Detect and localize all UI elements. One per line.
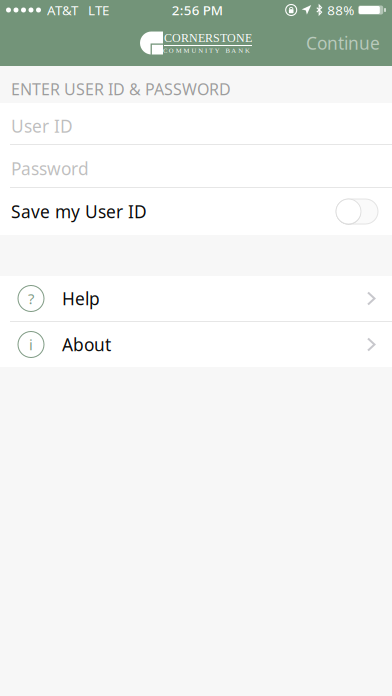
- staticText: Continue: [306, 31, 380, 54]
- button[interactable]: ?: [0, 276, 392, 321]
- staticText: Save my User ID: [11, 200, 147, 223]
- staticText: COMMUNITY BANK: [163, 47, 250, 54]
- button[interactable]: i: [0, 322, 392, 367]
- button[interactable]: Continue: [294, 21, 392, 65]
- staticText: Help: [62, 287, 100, 310]
- staticText: LTE: [88, 1, 109, 19]
- staticText: ENTER USER ID & PASSWORD: [11, 78, 231, 100]
- staticText: User ID: [11, 114, 73, 137]
- button[interactable]: Save my User ID: [336, 198, 378, 224]
- staticText: 2:56 PM: [172, 1, 223, 19]
- staticText: ?: [28, 289, 34, 308]
- staticText: 88%: [327, 1, 354, 19]
- staticText: i: [29, 335, 33, 354]
- staticText: Password: [11, 157, 89, 180]
- staticText: CORNERSTONE: [164, 31, 252, 45]
- staticText: AT&T: [47, 1, 78, 19]
- staticText: About: [62, 333, 111, 356]
